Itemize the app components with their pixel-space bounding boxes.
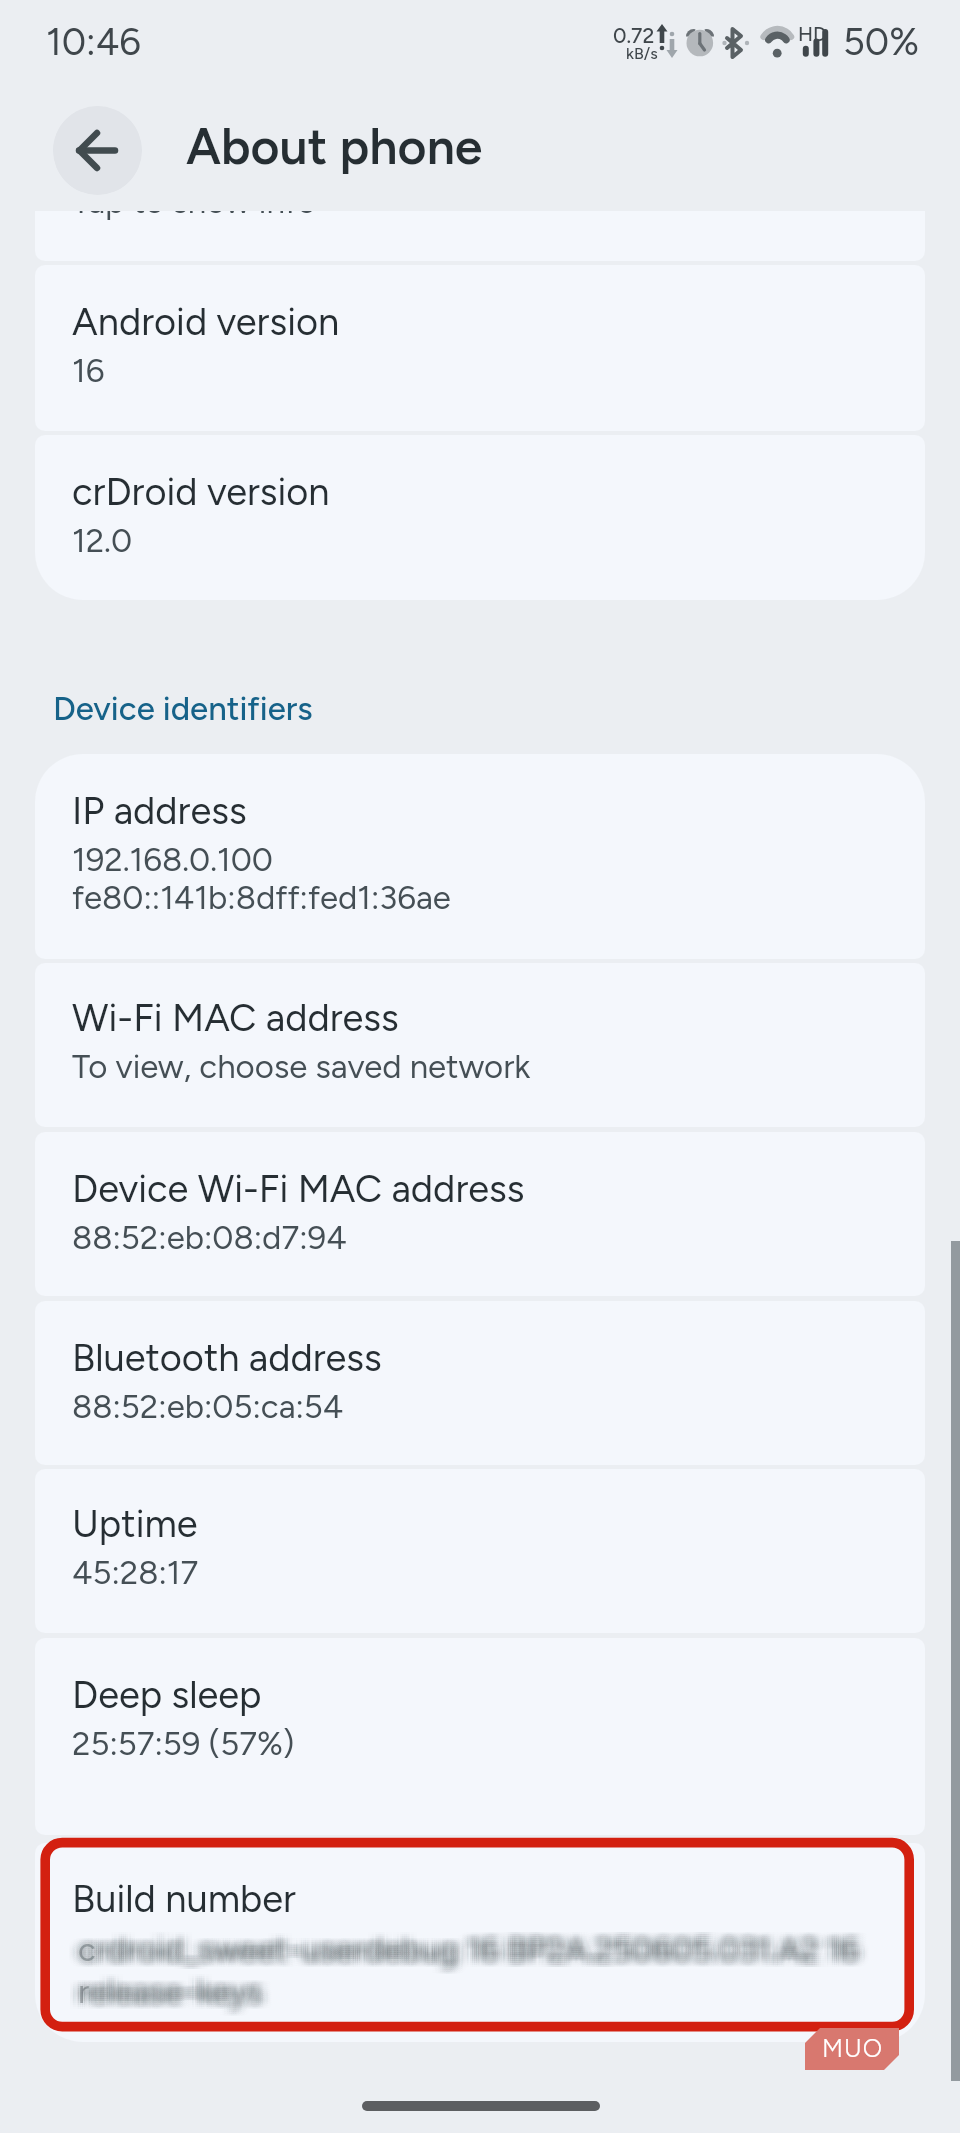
- staticText: crdroid_sweet-userdebug 16 BP2A.250605.0…: [82, 1930, 864, 2012]
- staticText: crdroid_sweet-userdebug 16 BP2A.250605.0…: [78, 1934, 860, 2016]
- staticText: crdroid_sweet-userdebug 16 BP2A.250605.0…: [80, 1928, 862, 2010]
- staticText: crdroid_sweet-userdebug 16 BP2A.250605.0…: [74, 1934, 856, 2016]
- staticText: 192.168.0.100 fe80::141b:8dff:fed1:36ae: [72, 840, 451, 917]
- staticText: crdroid_sweet-userdebug 16 BP2A.250605.0…: [76, 1930, 858, 2012]
- staticText: crdroid_sweet-userdebug 16 BP2A.250605.0…: [89, 1926, 871, 2008]
- button[interactable]: Tap to show info: [35, 211, 925, 261]
- staticText: crdroid_sweet-userdebug 16 BP2A.250605.0…: [89, 1930, 871, 2012]
- staticText: HD: [798, 22, 827, 46]
- staticText: Bluetooth address: [72, 1335, 382, 1381]
- staticText: c r: [78, 1930, 96, 2012]
- staticText: crdroid_sweet-userdebug 16 BP2A.250605.0…: [89, 1924, 871, 2006]
- staticText: crdroid_sweet-userdebug 16 BP2A.250605.0…: [87, 1936, 869, 2018]
- staticText: crdroid_sweet-userdebug 16 BP2A.250605.0…: [67, 1932, 849, 2014]
- button[interactable]: Deep sleep: [35, 1638, 925, 1835]
- staticText: crdroid_sweet-userdebug 16 BP2A.250605.0…: [85, 1928, 867, 2010]
- staticText: IP address: [72, 788, 247, 834]
- staticText: crdroid_sweet-userdebug 16 BP2A.250605.0…: [74, 1930, 856, 2012]
- staticText: crdroid_sweet-userdebug 16 BP2A.250605.0…: [82, 1932, 864, 2014]
- staticText: crdroid_sweet-userdebug 16 BP2A.250605.0…: [67, 1928, 849, 2010]
- button[interactable]: Uptime: [35, 1469, 925, 1633]
- staticText: crdroid_sweet-userdebug 16 BP2A.250605.0…: [69, 1930, 851, 2012]
- staticText: crdroid_sweet-userdebug 16 BP2A.250605.0…: [78, 1928, 860, 2010]
- staticText: 16: [72, 351, 105, 391]
- button[interactable]: Wi-Fi MAC address: [35, 963, 925, 1127]
- staticText: crdroid_sweet-userdebug 16 BP2A.250605.0…: [69, 1932, 851, 2014]
- staticText: crdroid_sweet-userdebug 16 BP2A.250605.0…: [85, 1924, 867, 2006]
- staticText: 25:57:59 (57%): [72, 1724, 295, 1764]
- staticText: crdroid_sweet-userdebug 16 BP2A.250605.0…: [80, 1932, 862, 2014]
- staticText: crdroid_sweet-userdebug 16 BP2A.250605.0…: [78, 1932, 860, 2014]
- staticText: Tap to show info: [72, 211, 317, 222]
- staticText: crdroid_sweet-userdebug 16 BP2A.250605.0…: [89, 1936, 871, 2018]
- staticText: MUO: [822, 2033, 884, 2063]
- staticText: 10:46: [46, 19, 141, 65]
- staticText: crdroid_sweet-userdebug 16 BP2A.250605.0…: [78, 1936, 860, 2018]
- staticText: Build number: [72, 1876, 296, 1922]
- staticText: crdroid_sweet-userdebug 16 BP2A.250605.0…: [87, 1934, 869, 2016]
- staticText: crdroid_sweet-userdebug 16 BP2A.250605.0…: [69, 1926, 851, 2008]
- staticText: 88:52:eb:05:ca:54: [72, 1387, 344, 1427]
- staticText: crdroid_sweet-userdebug 16 BP2A.250605.0…: [82, 1936, 864, 2018]
- staticText: crdroid_sweet-userdebug 16 BP2A.250605.0…: [80, 1934, 862, 2016]
- staticText: crdroid_sweet-userdebug 16 BP2A.250605.0…: [76, 1928, 858, 2010]
- staticText: Android version: [72, 299, 340, 345]
- staticText: crdroid_sweet-userdebug 16 BP2A.250605.0…: [89, 1932, 871, 2014]
- staticText: To view, choose saved network: [72, 1047, 531, 1087]
- staticText: crdroid_sweet-userdebug 16 BP2A.250605.0…: [74, 1926, 856, 2008]
- staticText: crdroid_sweet-userdebug 16 BP2A.250605.0…: [82, 1934, 864, 2016]
- staticText: crdroid_sweet-userdebug 16 BP2A.250605.0…: [85, 1934, 867, 2016]
- staticText: crdroid_sweet-userdebug 16 BP2A.250605.0…: [67, 1936, 849, 2018]
- staticText: 45:28:17: [72, 1553, 199, 1593]
- staticText: crdroid_sweet-userdebug 16 BP2A.250605.0…: [87, 1932, 869, 2014]
- staticText: crdroid_sweet-userdebug 16 BP2A.250605.0…: [78, 1924, 860, 2006]
- staticText: crdroid_sweet-userdebug 16 BP2A.250605.0…: [85, 1930, 867, 2012]
- staticText: crdroid_sweet-userdebug 16 BP2A.250605.0…: [80, 1936, 862, 2018]
- button[interactable]: Build number: [35, 1843, 925, 2042]
- staticText: crdroid_sweet-userdebug 16 BP2A.250605.0…: [76, 1926, 858, 2008]
- staticText: Wi-Fi MAC address: [72, 995, 399, 1041]
- staticText: Uptime: [72, 1501, 198, 1547]
- staticText: crdroid_sweet-userdebug 16 BP2A.250605.0…: [87, 1928, 869, 2010]
- staticText: crdroid_sweet-userdebug 16 BP2A.250605.0…: [85, 1926, 867, 2008]
- staticText: crdroid_sweet-userdebug 16 BP2A.250605.0…: [71, 1924, 853, 2006]
- staticText: crdroid_sweet-userdebug 16 BP2A.250605.0…: [76, 1936, 858, 2018]
- staticText: crDroid version: [72, 469, 330, 515]
- staticText: crdroid_sweet-userdebug 16 BP2A.250605.0…: [85, 1936, 867, 2018]
- button[interactable]: Device Wi-Fi MAC address: [35, 1132, 925, 1296]
- button[interactable]: Back: [53, 106, 142, 195]
- staticText: Deep sleep: [72, 1672, 262, 1718]
- staticText: crdroid_sweet-userdebug 16 BP2A.250605.0…: [87, 1924, 869, 2006]
- staticText: crdroid_sweet-userdebug 16 BP2A.250605.0…: [76, 1932, 858, 2014]
- staticText: crdroid_sweet-userdebug 16 BP2A.250605.0…: [71, 1934, 853, 2016]
- staticText: crdroid_sweet-userdebug 16 BP2A.250605.0…: [82, 1928, 864, 2010]
- staticText: crdroid_sweet-userdebug 16 BP2A.250605.0…: [78, 1926, 860, 2008]
- staticText: crdroid_sweet-userdebug 16 BP2A.250605.0…: [87, 1930, 869, 2012]
- staticText: 88:52:eb:08:d7:94: [72, 1218, 347, 1258]
- button[interactable]: crDroid version: [35, 435, 925, 600]
- staticText: 0.72: [613, 23, 655, 48]
- button[interactable]: Bluetooth address: [35, 1301, 925, 1465]
- staticText: crdroid_sweet-userdebug 16 BP2A.250605.0…: [80, 1924, 862, 2006]
- staticText: crdroid_sweet-userdebug 16 BP2A.250605.0…: [87, 1926, 869, 2008]
- staticText: crdroid_sweet-userdebug 16 BP2A.250605.0…: [89, 1934, 871, 2016]
- staticText: crdroid_sweet-userdebug 16 BP2A.250605.0…: [71, 1936, 853, 2018]
- staticText: crdroid_sweet-userdebug 16 BP2A.250605.0…: [82, 1926, 864, 2008]
- staticText: crdroid_sweet-userdebug 16 BP2A.250605.0…: [80, 1930, 862, 2012]
- button[interactable]: Android version: [35, 265, 925, 431]
- staticText: crdroid_sweet-userdebug 16 BP2A.250605.0…: [67, 1926, 849, 2008]
- staticText: crdroid_sweet-userdebug 16 BP2A.250605.0…: [74, 1936, 856, 2018]
- staticText: crdroid_sweet-userdebug 16 BP2A.250605.0…: [67, 1924, 849, 2006]
- staticText: crdroid_sweet-userdebug 16 BP2A.250605.0…: [74, 1924, 856, 2006]
- button[interactable]: IP address: [35, 754, 925, 959]
- staticText: crdroid_sweet-userdebug 16 BP2A.250605.0…: [71, 1930, 853, 2012]
- staticText: crdroid_sweet-userdebug 16 BP2A.250605.0…: [71, 1932, 853, 2014]
- staticText: crdroid_sweet-userdebug 16 BP2A.250605.0…: [85, 1932, 867, 2014]
- staticText: crdroid_sweet-userdebug 16 BP2A.250605.0…: [82, 1924, 864, 2006]
- staticText: crdroid_sweet-userdebug 16 BP2A.250605.0…: [74, 1928, 856, 2010]
- staticText: crdroid_sweet-userdebug 16 BP2A.250605.0…: [80, 1926, 862, 2008]
- staticText: crdroid_sweet-userdebug 16 BP2A.250605.0…: [76, 1934, 858, 2016]
- staticText: About phone: [186, 116, 483, 176]
- staticText: crdroid_sweet-userdebug 16 BP2A.250605.0…: [78, 1930, 860, 2012]
- staticText: crdroid_sweet-userdebug 16 BP2A.250605.0…: [71, 1928, 853, 2010]
